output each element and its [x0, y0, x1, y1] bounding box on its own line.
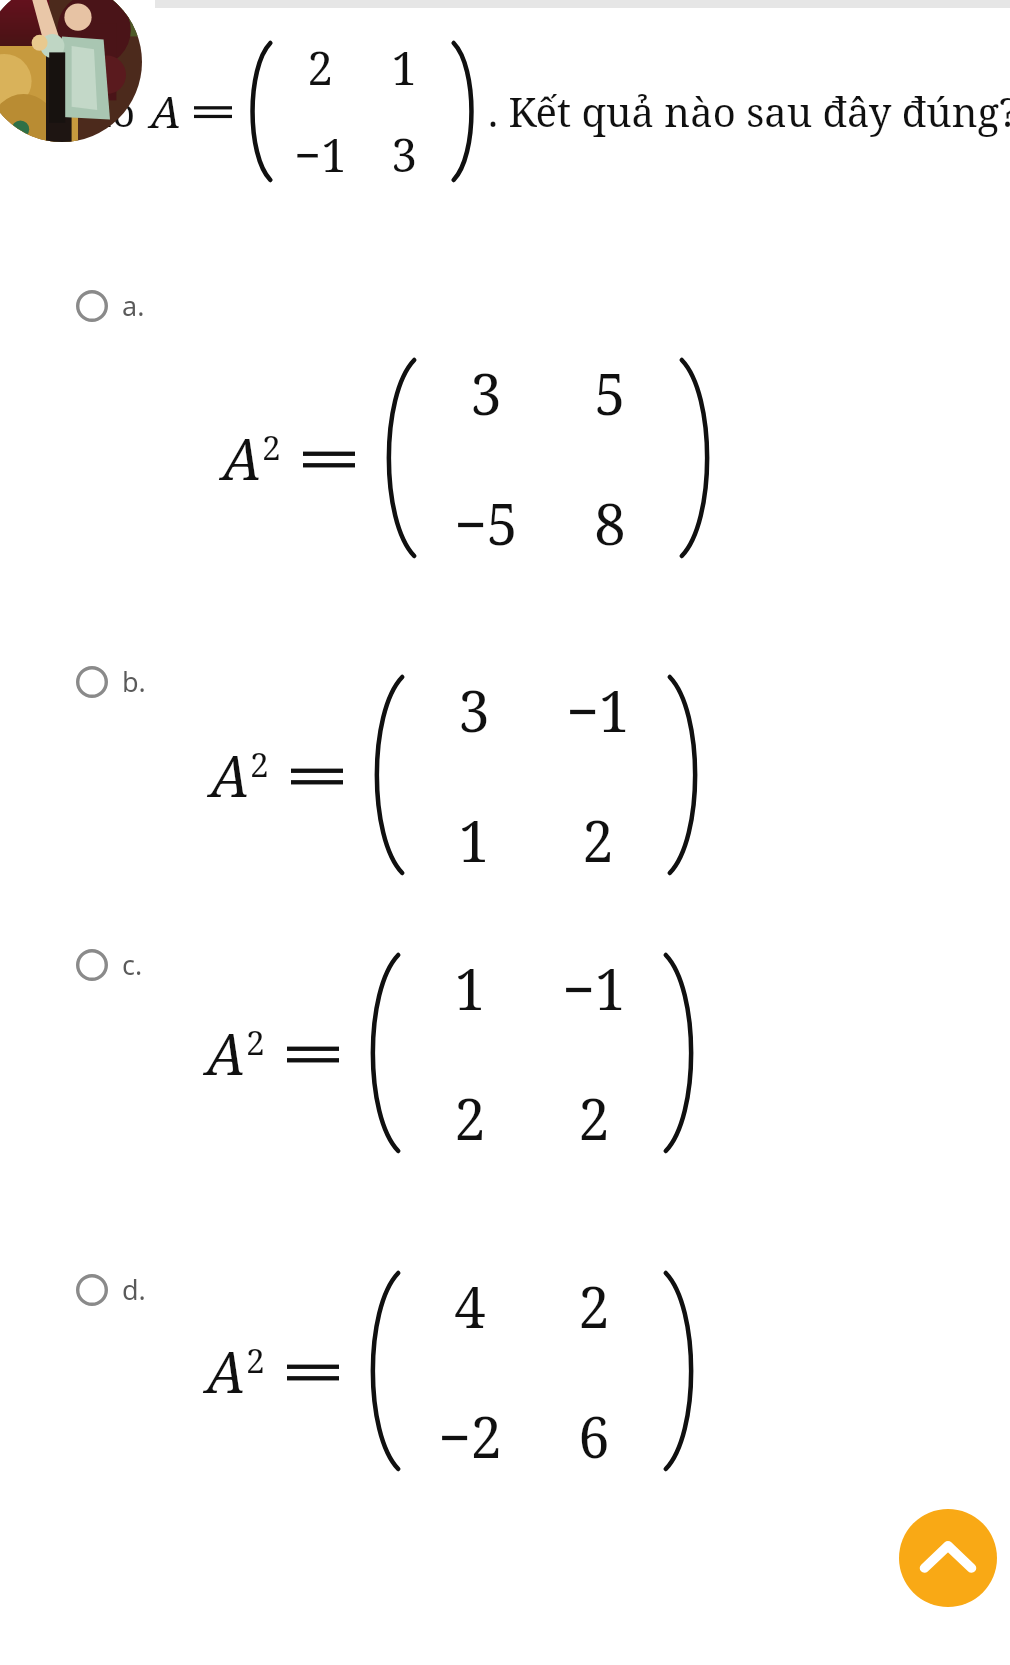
button[interactable] — [60, 928, 950, 1244]
staticText: 8 — [594, 485, 626, 561]
staticText: b. — [122, 663, 146, 700]
staticText: 2 — [250, 741, 269, 787]
staticText: 2 — [454, 1080, 486, 1156]
staticText: A — [222, 420, 262, 496]
staticText: 2 — [246, 1337, 265, 1383]
staticText: 3 — [458, 672, 490, 748]
button[interactable] — [60, 1253, 950, 1569]
staticText: 4 — [454, 1268, 486, 1344]
staticText: c. — [122, 946, 143, 983]
staticText: 1 — [391, 36, 417, 99]
staticText: 3 — [470, 355, 502, 431]
staticText: 6 — [578, 1398, 610, 1474]
staticText: 1 — [454, 950, 486, 1026]
staticText: 2 — [307, 36, 333, 99]
staticText: 2 — [262, 424, 281, 470]
staticText: 2 — [578, 1268, 610, 1344]
staticText: 5 — [594, 355, 626, 431]
staticText: A — [210, 737, 250, 813]
staticText: A — [206, 1333, 246, 1409]
staticText: a. — [122, 287, 145, 324]
staticText: 2 — [246, 1019, 265, 1065]
staticText: Cho — [62, 84, 136, 138]
button[interactable]: Scroll to top — [899, 1509, 997, 1607]
staticText: . Kết quả nào sau đây đúng? — [488, 84, 1010, 138]
staticText: 3 — [391, 123, 417, 186]
staticText: A — [150, 81, 182, 141]
button[interactable] — [60, 645, 950, 961]
staticText: A — [206, 1015, 246, 1091]
staticText: −1 — [562, 950, 626, 1026]
staticText: −1 — [294, 123, 347, 186]
staticText: −2 — [438, 1398, 502, 1474]
staticText: 2 — [578, 1080, 610, 1156]
staticText: 1 — [458, 802, 490, 878]
staticText: 2 — [582, 802, 614, 878]
staticText: −5 — [454, 485, 518, 561]
staticText: −1 — [566, 672, 630, 748]
staticText: d. — [122, 1271, 146, 1308]
button[interactable] — [60, 269, 950, 585]
